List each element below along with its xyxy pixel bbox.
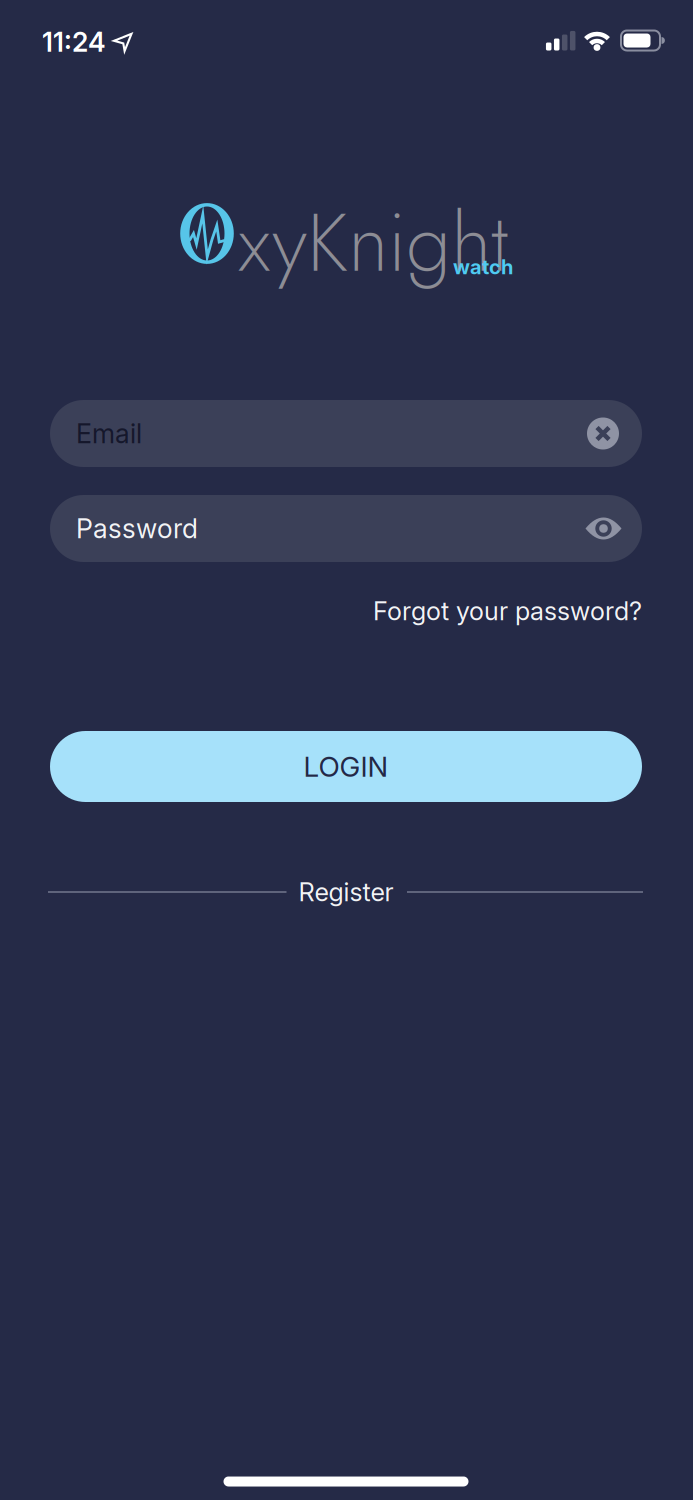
staticText: 11:24 — [42, 26, 106, 58]
staticText: Email — [76, 418, 142, 449]
staticText: xyKnight — [238, 184, 508, 301]
button[interactable]: LOGIN — [50, 731, 642, 802]
button[interactable]: Password — [50, 495, 642, 562]
staticText: LOGIN — [303, 750, 388, 783]
staticText: Forgot your password? — [373, 596, 642, 626]
button[interactable]: Forgot your password? — [373, 596, 642, 626]
button[interactable]: Register — [298, 877, 393, 907]
staticText: Password — [76, 513, 198, 544]
button[interactable]: Email — [50, 400, 642, 467]
staticText: watch — [453, 255, 513, 279]
staticText: Register — [298, 877, 393, 907]
